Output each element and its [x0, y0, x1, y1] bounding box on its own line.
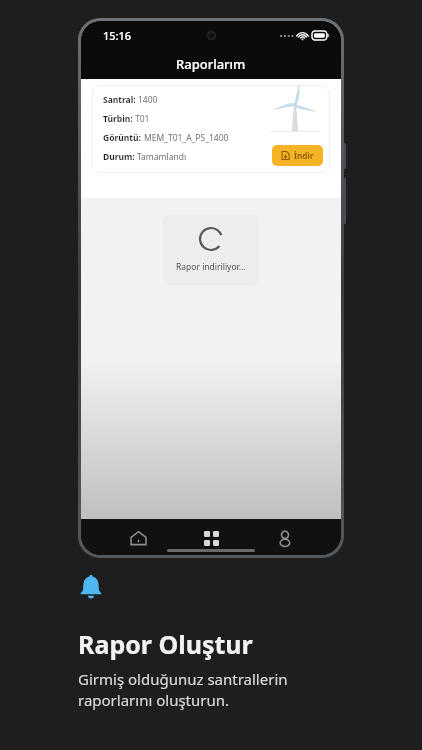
button[interactable]: Apps: [194, 522, 228, 555]
button[interactable]: Santral:: [92, 85, 330, 173]
staticText: Raporlarım: [176, 55, 246, 73]
staticText: Durum:: [103, 151, 137, 163]
staticText: T01: [135, 113, 150, 125]
staticText: İndir: [294, 150, 314, 161]
staticText: MEM_T01_A_PS_1400: [144, 132, 229, 144]
staticText: 15:16: [103, 28, 132, 43]
staticText: Rapor Oluştur: [78, 627, 253, 661]
button[interactable]: Home: [121, 522, 155, 555]
staticText: Türbin:: [103, 113, 135, 125]
staticText: Tamamlandı: [137, 151, 187, 163]
staticText: Rapor indiriliyor...: [176, 261, 246, 273]
staticText: 1400: [138, 94, 158, 106]
button[interactable]: Profile: [268, 522, 302, 555]
staticText: Santral:: [103, 94, 138, 106]
staticText: Girmiş olduğunuz santrallerin raporların…: [78, 669, 288, 711]
staticText: Görüntü:: [103, 132, 144, 144]
button[interactable]: İndir: [272, 145, 323, 166]
